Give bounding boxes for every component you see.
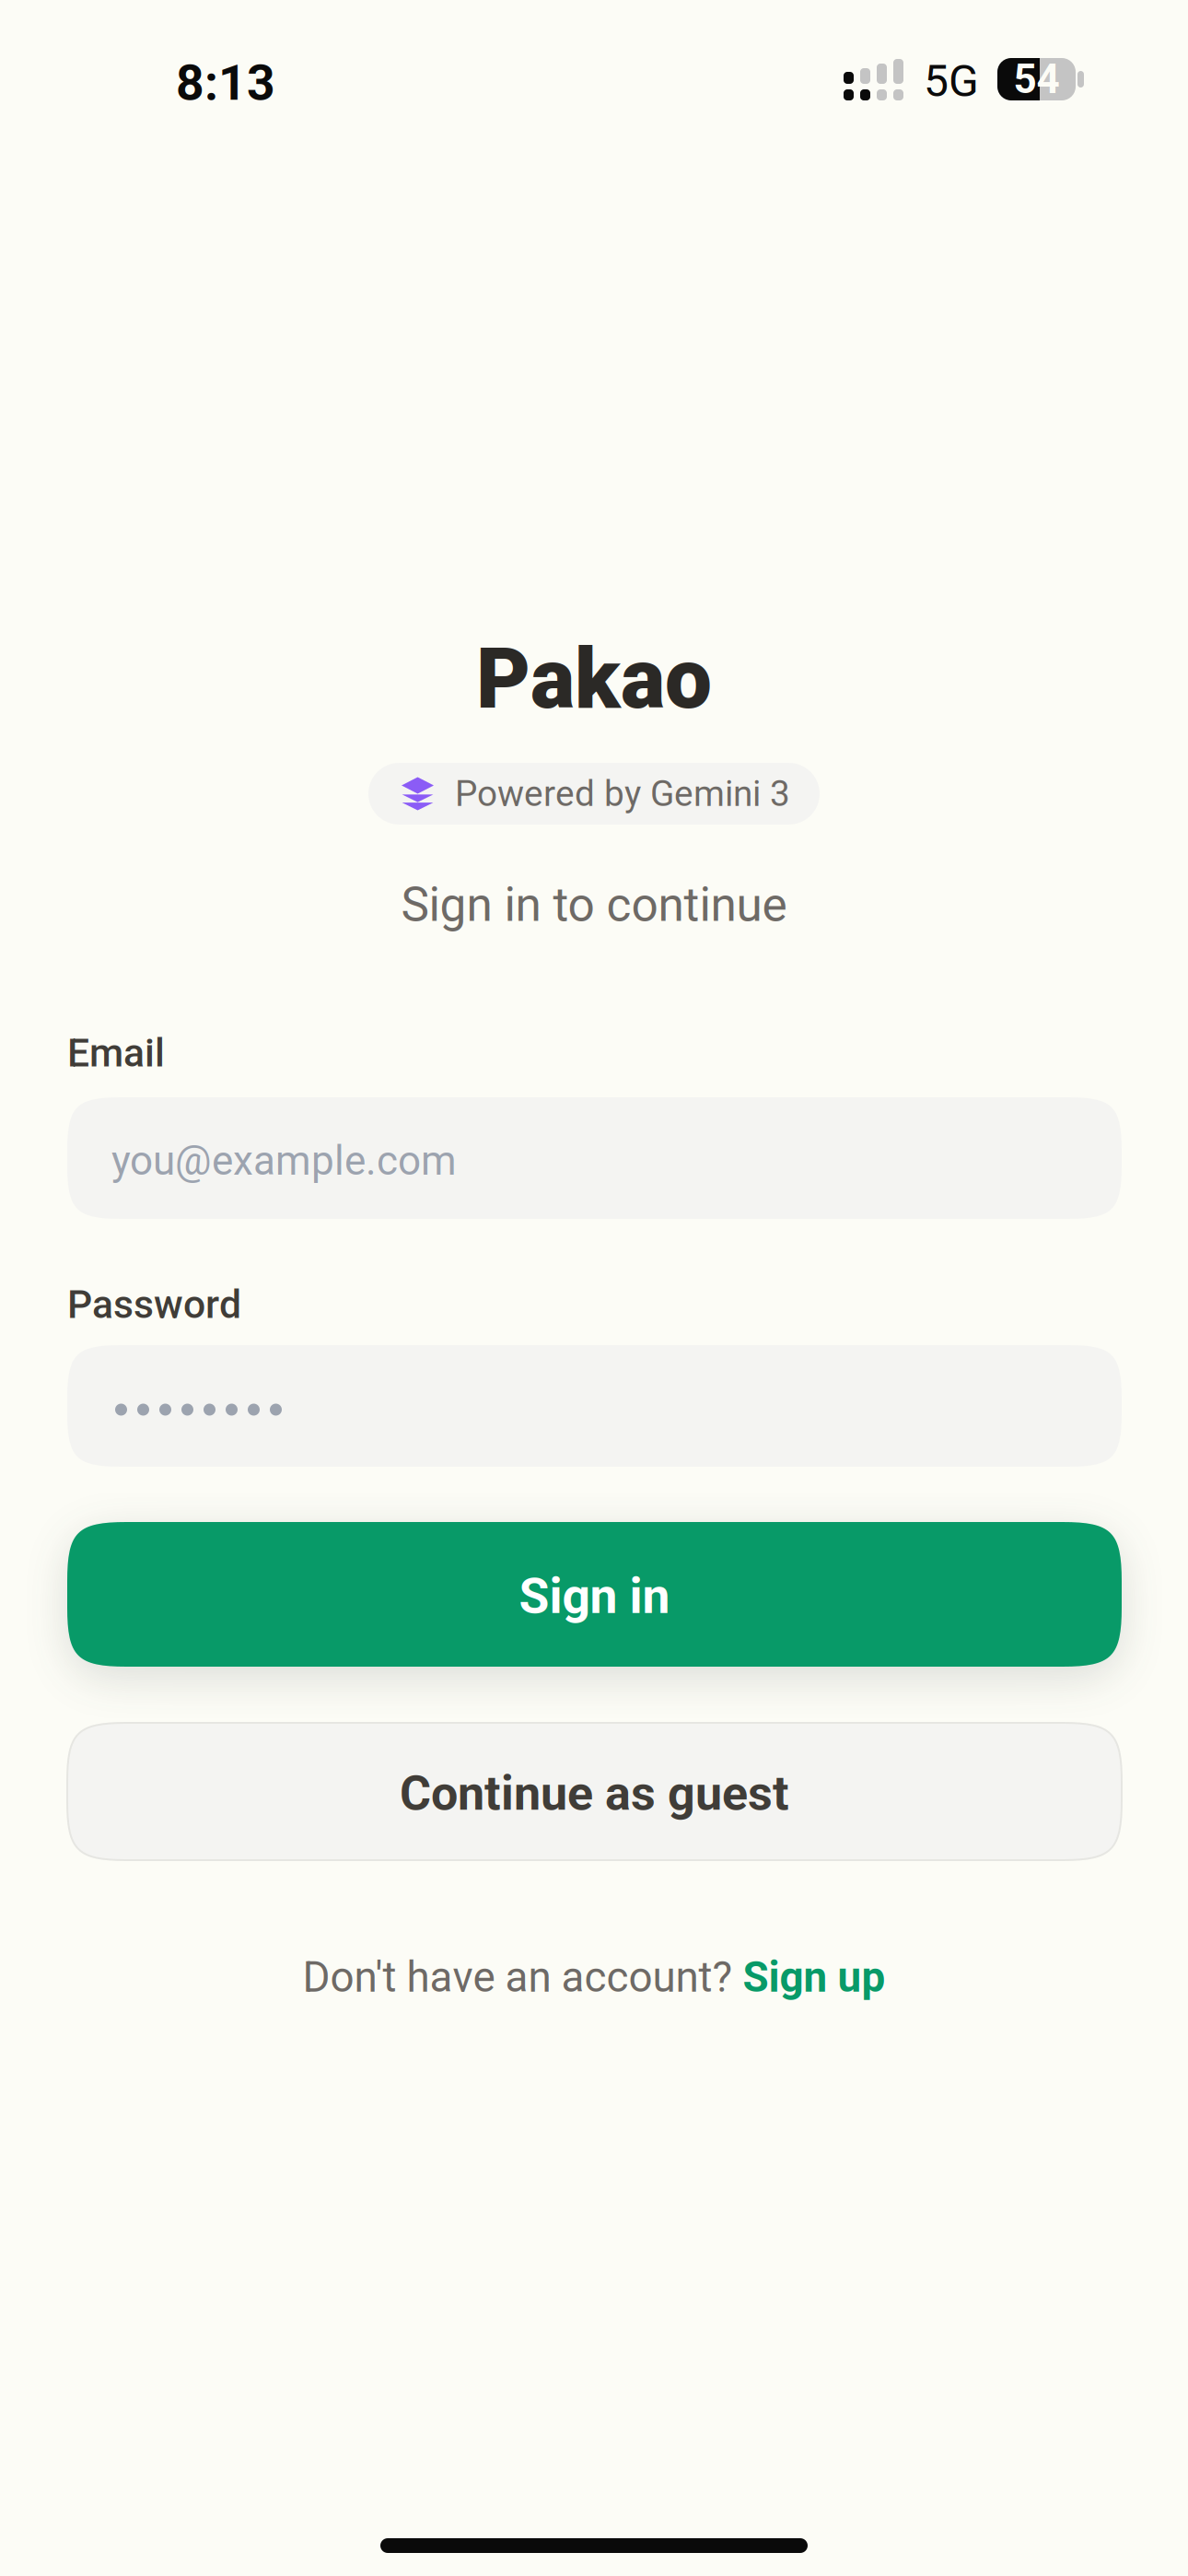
staticText: 5G — [924, 55, 979, 107]
staticText: Password — [67, 1282, 241, 1328]
staticText: Sign in — [519, 1567, 670, 1625]
staticText: Email — [67, 1030, 165, 1076]
staticText: 54 — [1013, 55, 1060, 103]
staticText: Powered by Gemini 3 — [455, 773, 790, 815]
button[interactable] — [67, 1345, 1122, 1467]
button[interactable]: Continue as guest — [67, 1723, 1122, 1860]
staticText: Continue as guest — [400, 1765, 789, 1821]
staticText: you@example.com — [111, 1137, 457, 1185]
button[interactable]: you@example.com — [67, 1097, 1122, 1219]
button[interactable]: Sign in — [67, 1522, 1122, 1667]
staticText: Sign in to continue — [401, 877, 787, 932]
staticText: Don't have an account? — [303, 1952, 743, 2002]
staticText: Pakao — [476, 630, 712, 728]
staticText: 8:13 — [176, 54, 275, 112]
button[interactable]: Don't have an account? — [303, 1951, 885, 2003]
staticText: Sign up — [743, 1952, 885, 2002]
